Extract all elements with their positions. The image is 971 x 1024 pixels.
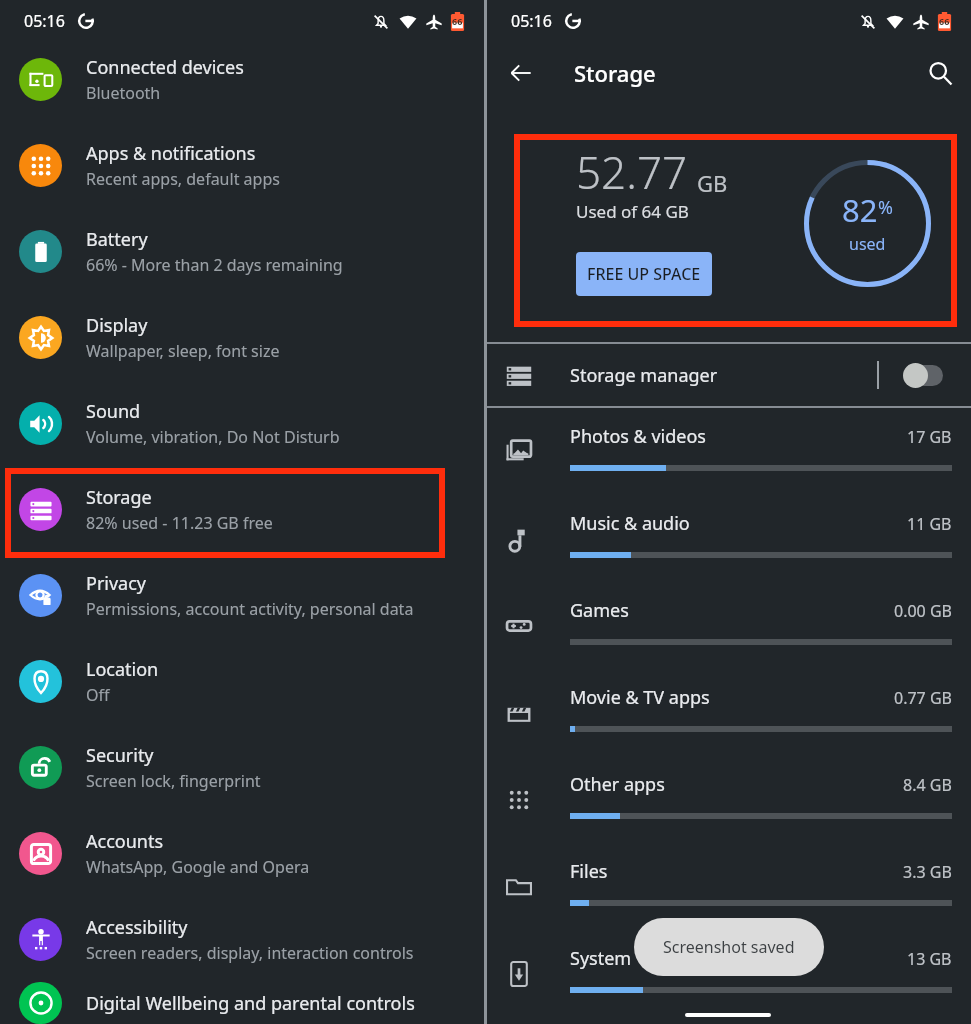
staticText: 0.77 GB xyxy=(894,687,952,709)
staticText: 52.77 xyxy=(576,142,688,202)
staticText: WhatsApp, Google and Opera xyxy=(86,856,310,878)
button[interactable]: Search xyxy=(919,52,961,94)
staticText: Music & audio xyxy=(570,511,690,536)
staticText: Other apps xyxy=(570,772,665,797)
button[interactable]: Other apps xyxy=(487,756,971,843)
staticText: Security xyxy=(86,743,154,768)
button[interactable]: Digital Wellbeing and parental controls xyxy=(0,982,484,1024)
staticText: Screenshot saved xyxy=(663,936,795,958)
button[interactable]: Photos & videos xyxy=(487,408,971,495)
staticText: Permissions, account activity, personal … xyxy=(86,598,414,620)
staticText: 8.4 GB xyxy=(903,774,952,796)
staticText: 05:16 xyxy=(511,10,552,32)
button[interactable]: Sound xyxy=(0,380,484,466)
staticText: 17 GB xyxy=(907,426,952,448)
staticText: Sound xyxy=(86,399,141,424)
staticText: Games xyxy=(570,598,629,623)
staticText: 66 xyxy=(452,15,463,27)
button[interactable]: Display xyxy=(0,294,484,380)
button[interactable]: Accessibility xyxy=(0,896,484,982)
staticText: 3.3 GB xyxy=(903,861,952,883)
staticText: FREE UP SPACE xyxy=(587,263,701,285)
staticText: Storage xyxy=(574,58,656,88)
button[interactable]: FREE UP SPACE xyxy=(576,252,712,296)
staticText: 82% used - 11.23 GB free xyxy=(86,512,273,534)
staticText: Accounts xyxy=(86,829,164,854)
staticText: Volume, vibration, Do Not Disturb xyxy=(86,426,340,448)
staticText: 11 GB xyxy=(907,513,952,535)
staticText: 0.00 GB xyxy=(894,600,952,622)
staticText: Off xyxy=(86,684,110,706)
button[interactable]: Movie & TV apps xyxy=(487,669,971,756)
button[interactable]: Battery xyxy=(0,208,484,294)
staticText: Photos & videos xyxy=(570,424,706,449)
button[interactable]: Storage xyxy=(0,466,484,552)
button[interactable]: Location xyxy=(0,638,484,724)
staticText: 05:16 xyxy=(24,10,65,32)
button[interactable]: Files xyxy=(487,843,971,930)
staticText: % xyxy=(878,195,893,220)
staticText: Files xyxy=(570,859,608,884)
button[interactable]: Accounts xyxy=(0,810,484,896)
button[interactable]: Music & audio xyxy=(487,495,971,582)
staticText: Wallpaper, sleep, font size xyxy=(86,340,280,362)
staticText: Bluetooth xyxy=(86,82,161,104)
staticText: Battery xyxy=(86,227,148,252)
staticText: Recent apps, default apps xyxy=(86,168,280,190)
staticText: Apps & notifications xyxy=(86,141,256,166)
staticText: 66% - More than 2 days remaining xyxy=(86,254,343,276)
staticText: 66 xyxy=(939,15,950,27)
button[interactable]: Privacy xyxy=(0,552,484,638)
staticText: Accessibility xyxy=(86,915,188,940)
staticText: Screen lock, fingerprint xyxy=(86,770,261,792)
staticText: Storage manager xyxy=(570,363,718,388)
staticText: Location xyxy=(86,657,159,682)
button[interactable]: Apps & notifications xyxy=(0,122,484,208)
staticText: Connected devices xyxy=(86,55,244,80)
staticText: Used of 64 GB xyxy=(576,200,689,223)
staticText: Movie & TV apps xyxy=(570,685,710,710)
staticText: System xyxy=(570,946,632,971)
button[interactable]: Games xyxy=(487,582,971,669)
button[interactable]: Security xyxy=(0,724,484,810)
button[interactable]: Connected devices xyxy=(0,36,484,122)
button[interactable]: Storage manager xyxy=(487,344,971,406)
staticText: used xyxy=(849,233,886,255)
staticText: Digital Wellbeing and parental controls xyxy=(86,991,415,1016)
staticText: Privacy xyxy=(86,571,147,596)
button[interactable]: System xyxy=(487,930,971,1017)
staticText: Screen readers, display, interaction con… xyxy=(86,942,414,964)
button[interactable]: Back xyxy=(500,52,542,94)
staticText: 82 xyxy=(842,189,878,231)
staticText: 13 GB xyxy=(907,948,952,970)
staticText: Storage xyxy=(86,485,152,510)
staticText: Display xyxy=(86,313,148,338)
button[interactable]: Storage manager toggle xyxy=(903,361,946,389)
staticText: GB xyxy=(697,168,728,198)
